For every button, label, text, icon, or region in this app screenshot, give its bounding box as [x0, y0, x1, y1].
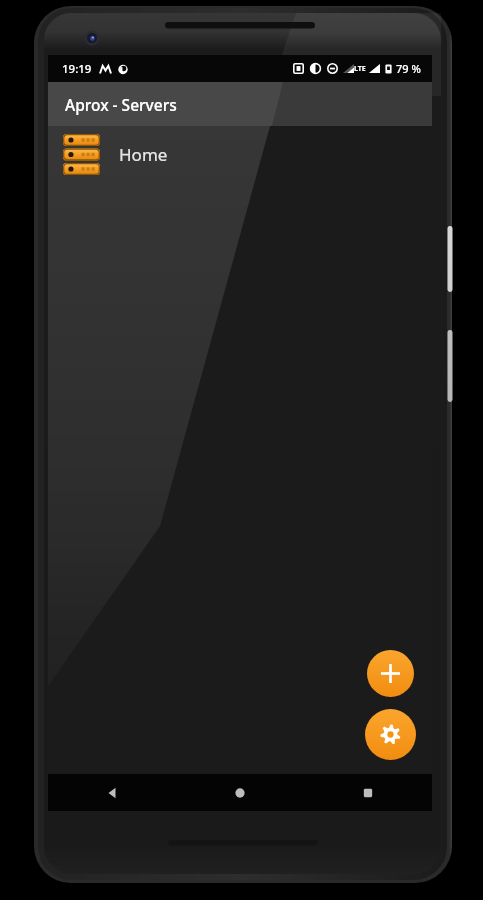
button[interactable]: Home: [48, 126, 432, 182]
staticText: 79 %: [396, 61, 421, 76]
staticText: Aprox - Servers: [65, 94, 177, 115]
button[interactable]: Add server: [367, 650, 414, 697]
staticText: Home: [119, 143, 168, 166]
staticText: 19:19: [62, 61, 92, 77]
staticText: LTE: [354, 64, 366, 74]
button[interactable]: Back: [48, 774, 176, 811]
button[interactable]: Recent apps: [304, 774, 432, 811]
button[interactable]: Home: [176, 774, 304, 811]
button[interactable]: Settings: [365, 709, 416, 760]
